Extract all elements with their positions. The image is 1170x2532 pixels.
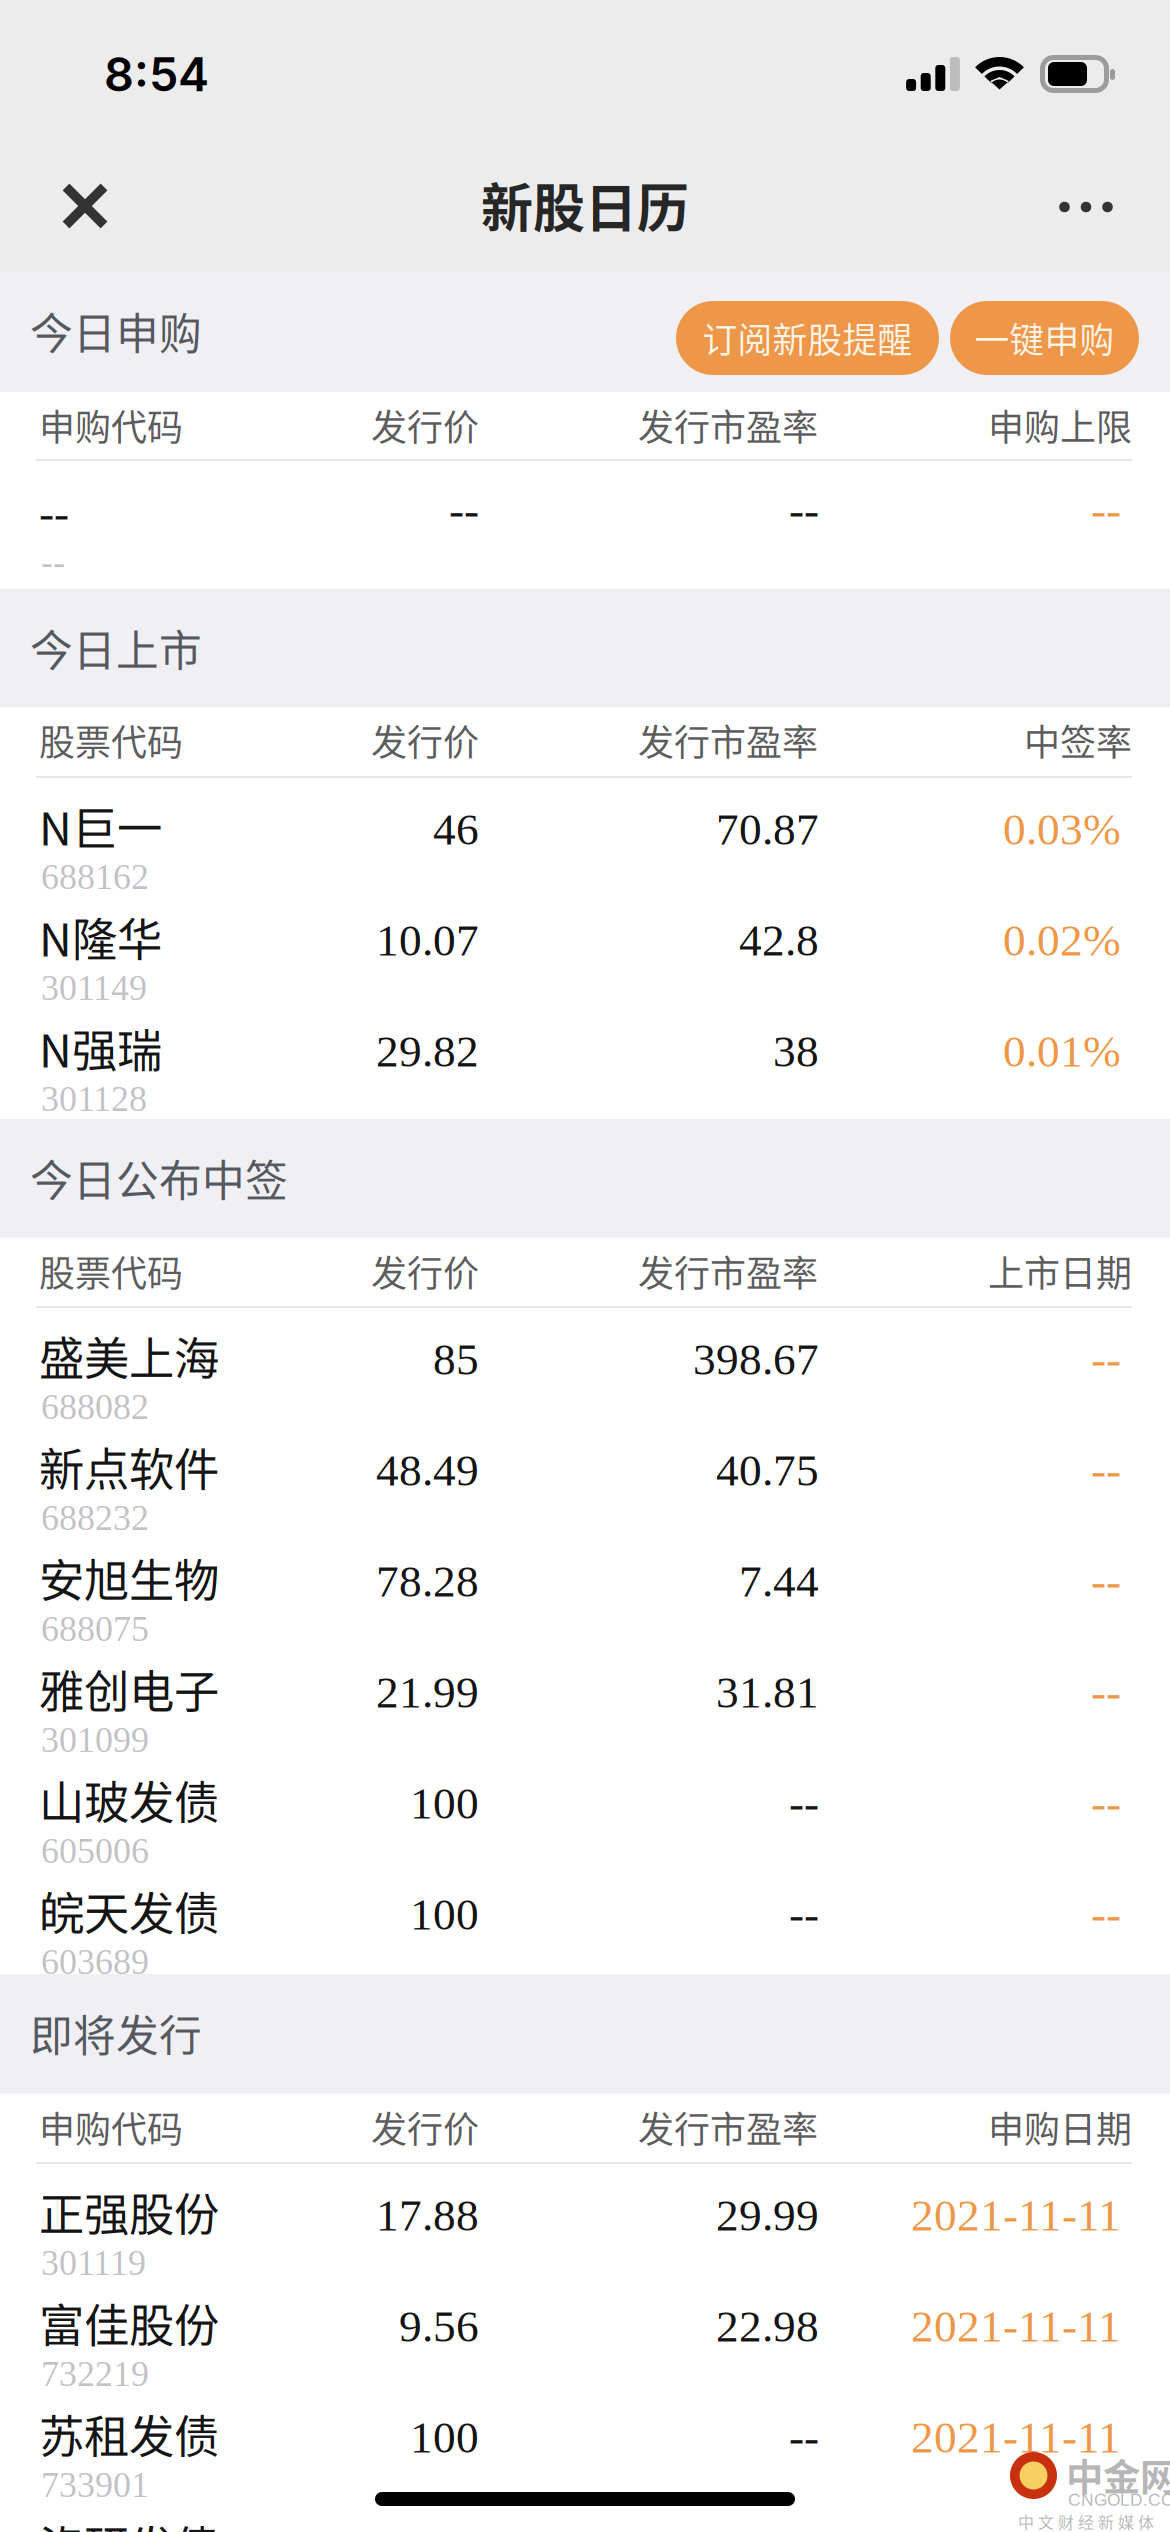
staticText: 0.01% xyxy=(1003,1026,1121,1076)
staticText: 688075 xyxy=(41,1609,149,1649)
staticText: 301119 xyxy=(41,2243,146,2283)
staticText: 申购上限 xyxy=(988,399,1132,451)
staticText: 398.67 xyxy=(693,1334,819,1384)
staticText: 发行市盈率 xyxy=(638,2101,818,2153)
staticText: -- xyxy=(1091,1778,1121,1828)
staticText: 301128 xyxy=(41,1079,147,1119)
staticText: N强瑞 xyxy=(39,1015,162,1081)
staticText: 发行价 xyxy=(371,399,479,451)
staticText: 22.98 xyxy=(716,2301,819,2351)
staticText: 股票代码 xyxy=(39,714,183,766)
staticText: 新点软件 xyxy=(39,1434,219,1500)
staticText: 17.88 xyxy=(376,2190,479,2240)
staticText: 732219 xyxy=(41,2354,149,2394)
staticText: -- xyxy=(1091,1889,1121,1939)
staticText: 订阅新股提醒 xyxy=(702,313,912,363)
staticText: 31.81 xyxy=(716,1667,819,1717)
staticText: 603689 xyxy=(41,1942,149,1982)
staticText: 0.03% xyxy=(1003,804,1121,854)
staticText: 发行市盈率 xyxy=(638,714,818,766)
staticText: 发行价 xyxy=(371,2101,479,2153)
staticText: 申购代码 xyxy=(39,399,183,451)
staticText: 85 xyxy=(433,1334,479,1384)
staticText: CNGOLD.COM.CN xyxy=(1068,2490,1170,2509)
staticText: 2021-11-11 xyxy=(911,2190,1121,2240)
staticText: 盛美上海 xyxy=(39,1323,219,1389)
staticText: -- xyxy=(789,1889,819,1939)
staticText: 2021-11-11 xyxy=(911,2412,1121,2462)
staticText: 48.49 xyxy=(376,1445,479,1495)
staticText: 70.87 xyxy=(716,804,819,854)
staticText: 46 xyxy=(433,804,479,854)
staticText: -- xyxy=(1091,1667,1121,1717)
staticText: 富佳股份 xyxy=(39,2290,219,2356)
staticText: 雅创电子 xyxy=(39,1656,219,1722)
staticText: 301099 xyxy=(41,1720,149,1760)
staticText: 发行市盈率 xyxy=(638,399,818,451)
staticText: 山玻发债 xyxy=(39,1767,219,1833)
staticText: 42.8 xyxy=(739,915,819,965)
staticText: 38 xyxy=(773,1026,819,1076)
staticText: 即将发行 xyxy=(30,2002,202,2064)
button[interactable]: 订阅新股提醒 xyxy=(676,301,939,375)
staticText: -- xyxy=(1091,485,1121,535)
button[interactable]: 更多 xyxy=(1030,151,1142,263)
staticText: 今日公布中签 xyxy=(30,1147,288,1209)
staticText: 2021-11-11 xyxy=(911,2301,1121,2351)
staticText: 2021-11-11 xyxy=(911,2523,1121,2532)
staticText: 申购代码 xyxy=(39,2101,183,2153)
staticText: 新股日历 xyxy=(481,167,689,242)
staticText: 78.28 xyxy=(376,1556,479,1606)
staticText: 10.07 xyxy=(376,915,479,965)
staticText: 发行市盈率 xyxy=(638,1245,818,1297)
staticText: 上市日期 xyxy=(988,1245,1132,1297)
staticText: 股票代码 xyxy=(39,1245,183,1297)
staticText: 21.99 xyxy=(376,1667,479,1717)
staticText: 100 xyxy=(410,1889,479,1939)
staticText: 605006 xyxy=(41,1831,149,1871)
staticText: 7.44 xyxy=(739,1556,819,1606)
button[interactable]: 一键申购 xyxy=(950,301,1139,375)
staticText: -- xyxy=(1091,1334,1121,1384)
staticText: 中 文 财 经 新 媒 体 xyxy=(1018,2510,1154,2532)
staticText: 皖天发债 xyxy=(39,1878,219,1944)
staticText: 中签率 xyxy=(1024,714,1132,766)
staticText: 申购日期 xyxy=(988,2101,1132,2153)
staticText: -- xyxy=(449,485,479,535)
staticText: 今日申购 xyxy=(30,300,202,362)
staticText: 一键申购 xyxy=(974,313,1114,363)
staticText: 中金网 xyxy=(1066,2448,1170,2502)
staticText: -- xyxy=(1091,1556,1121,1606)
staticText: 苏租发债 xyxy=(39,2401,219,2467)
staticText: 8:54 xyxy=(104,46,209,102)
staticText: 安旭生物 xyxy=(39,1545,219,1611)
staticText: -- xyxy=(789,2412,819,2462)
staticText: 今日上市 xyxy=(30,617,202,679)
staticText: 301149 xyxy=(41,968,147,1008)
staticText: 688162 xyxy=(41,857,149,897)
staticText: 688232 xyxy=(41,1498,149,1538)
staticText: 9.56 xyxy=(399,2301,479,2351)
staticText: N巨一 xyxy=(39,793,162,859)
staticText: -- xyxy=(789,485,819,535)
staticText: 发行价 xyxy=(371,714,479,766)
staticText: 发行价 xyxy=(371,1245,479,1297)
staticText: 100 xyxy=(410,1778,479,1828)
staticText: -- xyxy=(789,1778,819,1828)
staticText: 733901 xyxy=(41,2465,149,2505)
staticText: 688082 xyxy=(41,1387,149,1427)
staticText: 40.75 xyxy=(716,1445,819,1495)
staticText: 正强股份 xyxy=(39,2179,219,2245)
staticText: -- xyxy=(41,542,65,582)
staticText: 29.82 xyxy=(376,1026,479,1076)
staticText: 100 xyxy=(410,2412,479,2462)
button[interactable]: 关闭 xyxy=(29,150,141,262)
staticText: 29.99 xyxy=(716,2190,819,2240)
staticText: 0.02% xyxy=(1003,915,1121,965)
staticText: N隆华 xyxy=(39,904,162,970)
staticText: 沒研发债 xyxy=(39,2512,219,2532)
staticText: -- xyxy=(39,488,69,538)
staticText: -- xyxy=(1091,1445,1121,1495)
